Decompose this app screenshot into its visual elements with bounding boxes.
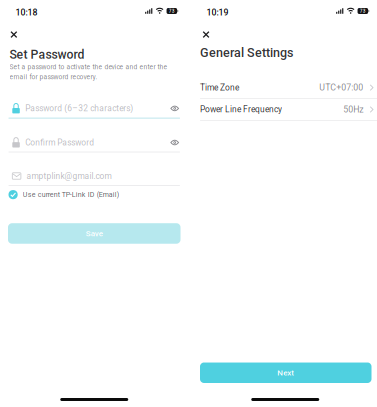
button[interactable]: Show password bbox=[168, 136, 179, 149]
staticText: Power Line Frequency bbox=[200, 105, 282, 114]
staticText: 50Hz bbox=[343, 104, 363, 115]
staticText: 73 bbox=[360, 8, 366, 14]
button[interactable]: Show password bbox=[168, 102, 179, 115]
button[interactable]: Save bbox=[8, 223, 180, 244]
staticText: General Settings bbox=[200, 45, 293, 60]
staticText: Set Password bbox=[9, 47, 84, 62]
staticText: Use current TP-Link ID (Email) bbox=[23, 190, 119, 199]
staticText: 10:18 bbox=[15, 7, 37, 18]
button[interactable]: Next bbox=[200, 362, 371, 383]
button[interactable]: Time Zone bbox=[191, 77, 377, 99]
staticText: Time Zone bbox=[200, 83, 239, 92]
button[interactable]: Close bbox=[6, 27, 21, 42]
staticText: amptplink@gmail.com bbox=[26, 171, 111, 181]
button[interactable]: Power Line Frequency bbox=[191, 99, 377, 121]
staticText: 10:19 bbox=[206, 7, 228, 18]
staticText: Confirm Password bbox=[25, 138, 94, 147]
staticText: 73 bbox=[169, 8, 175, 14]
button[interactable]: Use current TP-Link ID (Email) bbox=[0, 186, 188, 201]
staticText: Save bbox=[86, 229, 103, 238]
staticText: Password (6–32 characters) bbox=[25, 103, 133, 113]
button[interactable]: Close bbox=[198, 27, 214, 42]
staticText: UTC+07:00 bbox=[319, 82, 363, 93]
staticText: email for password recovery. bbox=[9, 73, 97, 81]
staticText: Set a password to activate the device an… bbox=[9, 63, 167, 71]
staticText: Next bbox=[277, 368, 294, 377]
